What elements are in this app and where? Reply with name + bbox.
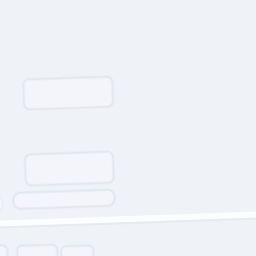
button[interactable]: Key [0, 241, 3, 256]
button[interactable]: Message [25, 76, 114, 106]
button[interactable]: Message [24, 151, 112, 182]
button[interactable]: Message [11, 189, 112, 205]
button[interactable]: Key [57, 244, 89, 256]
button[interactable]: Key [13, 242, 53, 256]
